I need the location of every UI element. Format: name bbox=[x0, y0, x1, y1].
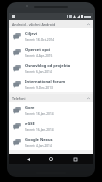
other: Collapse section bbox=[87, 23, 90, 26]
button[interactable]: Forum bbox=[9, 44, 93, 60]
other: Forum bbox=[13, 106, 21, 114]
button[interactable]: Android - všichni Android bbox=[9, 20, 93, 28]
other: Forum bbox=[13, 32, 21, 40]
other: Collapse section bbox=[87, 97, 90, 100]
staticText: Osnovblog od projekta bbox=[25, 63, 71, 68]
staticText: Telefoni bbox=[12, 96, 26, 101]
staticText: Android - všichni Android bbox=[12, 22, 56, 27]
button[interactable]: Forum bbox=[9, 134, 93, 150]
other: Forum bbox=[13, 48, 21, 56]
button[interactable]: Back bbox=[23, 154, 33, 164]
staticText: Google Nexus bbox=[25, 137, 53, 142]
staticText: Secret: 9-Dec-2013 bbox=[25, 86, 53, 90]
staticText: Secret: 16-Jan-2014 bbox=[25, 128, 54, 132]
staticText: Secret: 18-Jan-2014 bbox=[25, 112, 54, 116]
staticText: Secret: 6-Jan-2014 bbox=[25, 70, 52, 74]
staticText: Secret: 4-Apr-2015 bbox=[25, 54, 53, 58]
staticText: eGSE bbox=[25, 121, 35, 126]
button[interactable]: Forum bbox=[9, 118, 93, 134]
button[interactable]: Forum bbox=[9, 76, 93, 92]
other: Forum bbox=[13, 80, 21, 88]
button[interactable]: Forum bbox=[9, 28, 93, 44]
button[interactable]: Forum bbox=[9, 60, 93, 76]
button[interactable]: Recent apps bbox=[70, 154, 80, 164]
other: Forum bbox=[13, 138, 21, 146]
other: Forum bbox=[13, 122, 21, 130]
staticText: Ciljevi bbox=[25, 31, 37, 36]
button[interactable]: Forum bbox=[9, 102, 93, 118]
staticText: Secret: 18-Oct-2014 bbox=[25, 38, 55, 42]
staticText: Secret: 4-Jan-2014 bbox=[25, 144, 52, 148]
staticText: International forum bbox=[25, 79, 66, 84]
staticText: Opercet opci bbox=[25, 47, 51, 52]
button[interactable]: Telefoni bbox=[9, 94, 93, 102]
staticText: Gore bbox=[25, 105, 35, 110]
other: Forum bbox=[13, 64, 21, 72]
button[interactable]: Home bbox=[46, 154, 56, 164]
